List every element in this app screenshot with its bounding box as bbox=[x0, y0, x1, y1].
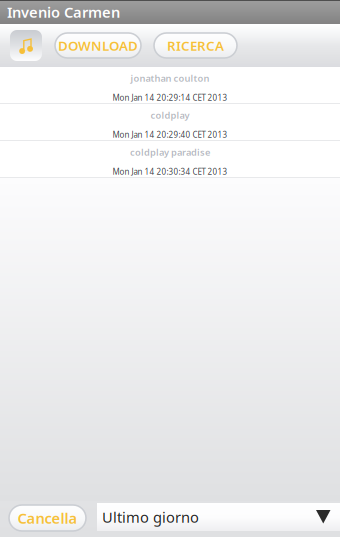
button[interactable]: Cancella bbox=[9, 505, 86, 531]
button[interactable]: coldplay paradise bbox=[0, 141, 340, 177]
button[interactable]: jonathan coulton bbox=[0, 67, 340, 103]
button[interactable]: Ultimo giorno bbox=[97, 503, 340, 531]
staticText: RICERCA bbox=[167, 37, 224, 54]
button[interactable]: RICERCA bbox=[154, 33, 237, 58]
staticText: Cancella bbox=[17, 508, 77, 528]
button[interactable]: Music bbox=[10, 30, 42, 61]
button[interactable]: DOWNLOAD bbox=[55, 33, 141, 58]
staticText: coldplay bbox=[150, 109, 189, 121]
staticText: DOWNLOAD bbox=[58, 37, 138, 54]
staticText: Invenio Carmen bbox=[7, 2, 120, 22]
staticText: Mon Jan 14 20:29:40 CET 2013 bbox=[112, 129, 227, 140]
staticText: Mon Jan 14 20:30:34 CET 2013 bbox=[112, 166, 227, 177]
staticText: coldplay paradise bbox=[130, 146, 210, 158]
button[interactable]: coldplay bbox=[0, 104, 340, 140]
staticText: Mon Jan 14 20:29:14 CET 2013 bbox=[112, 92, 227, 103]
staticText: jonathan coulton bbox=[130, 72, 209, 84]
staticText: Ultimo giorno bbox=[102, 507, 199, 527]
